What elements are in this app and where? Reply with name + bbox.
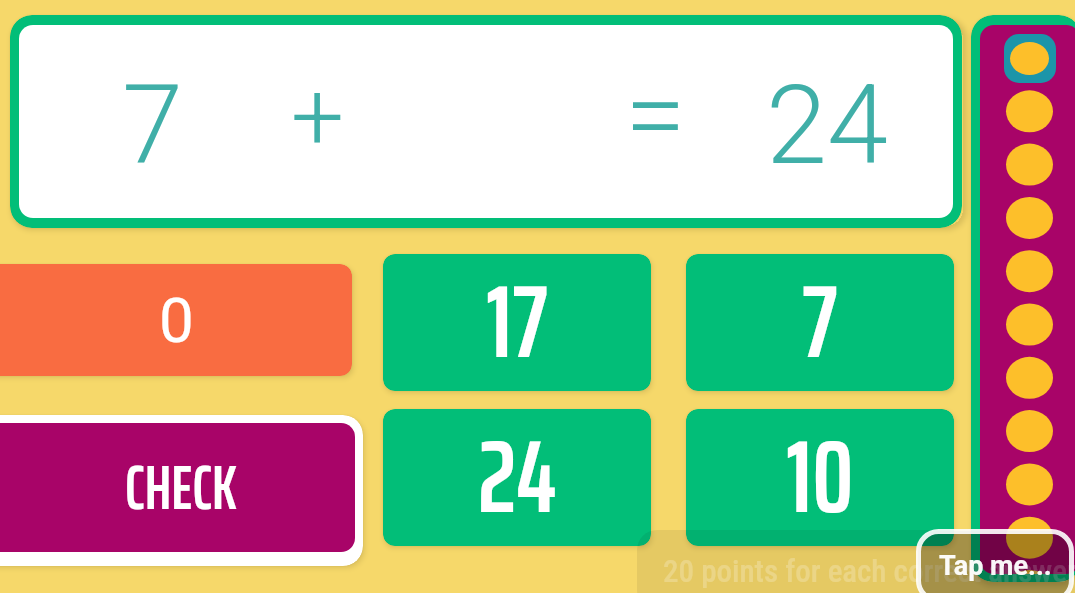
button[interactable]: 7 xyxy=(686,254,954,391)
staticText: 0 xyxy=(159,284,194,357)
other: Current level xyxy=(1004,34,1056,83)
button[interactable]: 10 xyxy=(686,409,954,546)
staticText: 24 xyxy=(478,409,557,532)
button[interactable]: 0 xyxy=(0,264,352,376)
staticText: CHECK xyxy=(125,440,237,536)
staticText: 7 xyxy=(802,254,838,377)
button[interactable]: CHECK xyxy=(0,423,355,552)
staticText: 17 xyxy=(486,254,548,377)
button[interactable]: 7 xyxy=(10,15,962,228)
button[interactable]: Tap me... xyxy=(916,529,1074,593)
button[interactable]: 17 xyxy=(383,254,651,391)
button[interactable]: 24 xyxy=(383,409,651,546)
staticText: 24 xyxy=(766,61,889,190)
staticText: + xyxy=(291,62,345,172)
staticText: 10 xyxy=(786,409,854,532)
staticText: 7 xyxy=(122,60,184,189)
staticText: = xyxy=(625,50,686,179)
button[interactable]: 20 points for each correct answer xyxy=(637,530,1075,593)
staticText: 20 points for each correct answer xyxy=(663,553,1075,589)
staticText: Tap me... xyxy=(939,550,1052,582)
